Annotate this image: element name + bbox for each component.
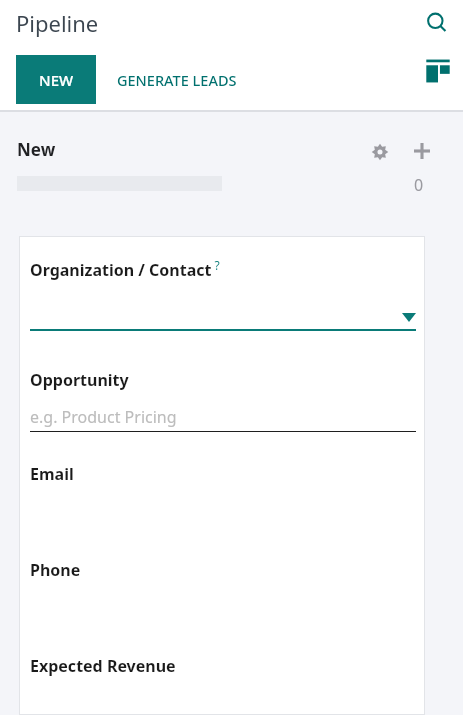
button[interactable]: e.g. Product Pricing bbox=[30, 406, 416, 432]
staticText: GENERATE LEADS bbox=[117, 70, 237, 90]
button[interactable]: NEW bbox=[16, 55, 96, 104]
staticText: Organization / Contact ? bbox=[30, 257, 220, 280]
button[interactable]: Add bbox=[409, 138, 435, 164]
button[interactable]: Stage settings bbox=[368, 140, 392, 164]
staticText: Phone bbox=[30, 559, 81, 581]
staticText: Email bbox=[30, 463, 74, 485]
staticText: Pipeline bbox=[16, 8, 99, 38]
staticText: NEW bbox=[39, 70, 74, 90]
button[interactable]: Search bbox=[424, 10, 450, 36]
button[interactable]: GENERATE LEADS bbox=[96, 55, 258, 104]
staticText: Opportunity bbox=[30, 369, 129, 391]
staticText: 0 bbox=[414, 174, 424, 196]
staticText: e.g. Product Pricing bbox=[30, 406, 177, 428]
button[interactable] bbox=[30, 307, 416, 331]
button[interactable]: Change view layout bbox=[423, 56, 453, 86]
staticText: Expected Revenue bbox=[30, 655, 176, 677]
staticText: New bbox=[17, 138, 56, 161]
